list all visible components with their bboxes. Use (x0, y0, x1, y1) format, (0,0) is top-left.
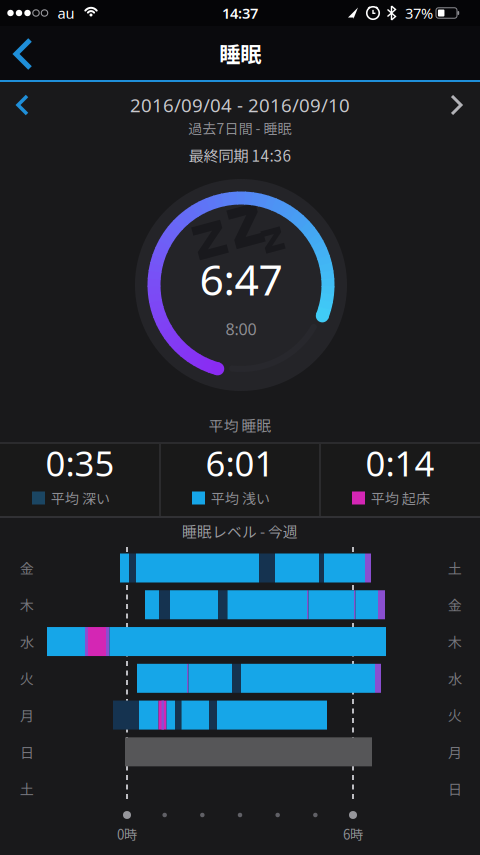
button[interactable] (13, 93, 33, 117)
button[interactable] (6, 34, 50, 74)
staticText: 平均 深い (51, 488, 110, 508)
staticText: 6時 (343, 824, 363, 844)
button[interactable] (446, 93, 466, 117)
staticText: 14:37 (222, 3, 258, 23)
staticText: 火 (448, 705, 462, 725)
staticText: 土 (20, 778, 34, 799)
staticText: 過去7日間 - 睡眠 (188, 118, 291, 138)
staticText: 日 (448, 778, 462, 799)
staticText: 木 (20, 595, 34, 615)
staticText: 月 (20, 705, 34, 725)
staticText: 金 (20, 558, 34, 578)
staticText: au (57, 3, 74, 23)
staticText: 0:35 (45, 440, 114, 486)
staticText: 0時 (117, 824, 137, 844)
staticText: 平均 起床 (371, 488, 430, 508)
staticText: 睡眠 (219, 38, 261, 68)
staticText: 金 (448, 595, 462, 615)
staticText: 0:14 (365, 440, 434, 486)
staticText: 平均 浅い (211, 488, 270, 508)
staticText: 最終同期 14:36 (188, 144, 291, 166)
staticText: 木 (448, 631, 462, 652)
staticText: 水 (20, 631, 34, 652)
staticText: 37% (405, 3, 433, 23)
staticText: 8:00 (225, 318, 256, 340)
staticText: 6:47 (199, 251, 282, 307)
staticText: 2016/09/04 - 2016/09/10 (130, 93, 350, 117)
staticText: 月 (448, 742, 462, 762)
staticText: 水 (448, 668, 462, 688)
staticText: 日 (20, 742, 34, 762)
staticText: 睡眠レベル - 今週 (182, 520, 298, 542)
staticText: 土 (448, 558, 462, 578)
staticText: 6:01 (205, 440, 274, 486)
staticText: 平均 睡眠 (208, 414, 271, 436)
staticText: 火 (20, 668, 34, 688)
